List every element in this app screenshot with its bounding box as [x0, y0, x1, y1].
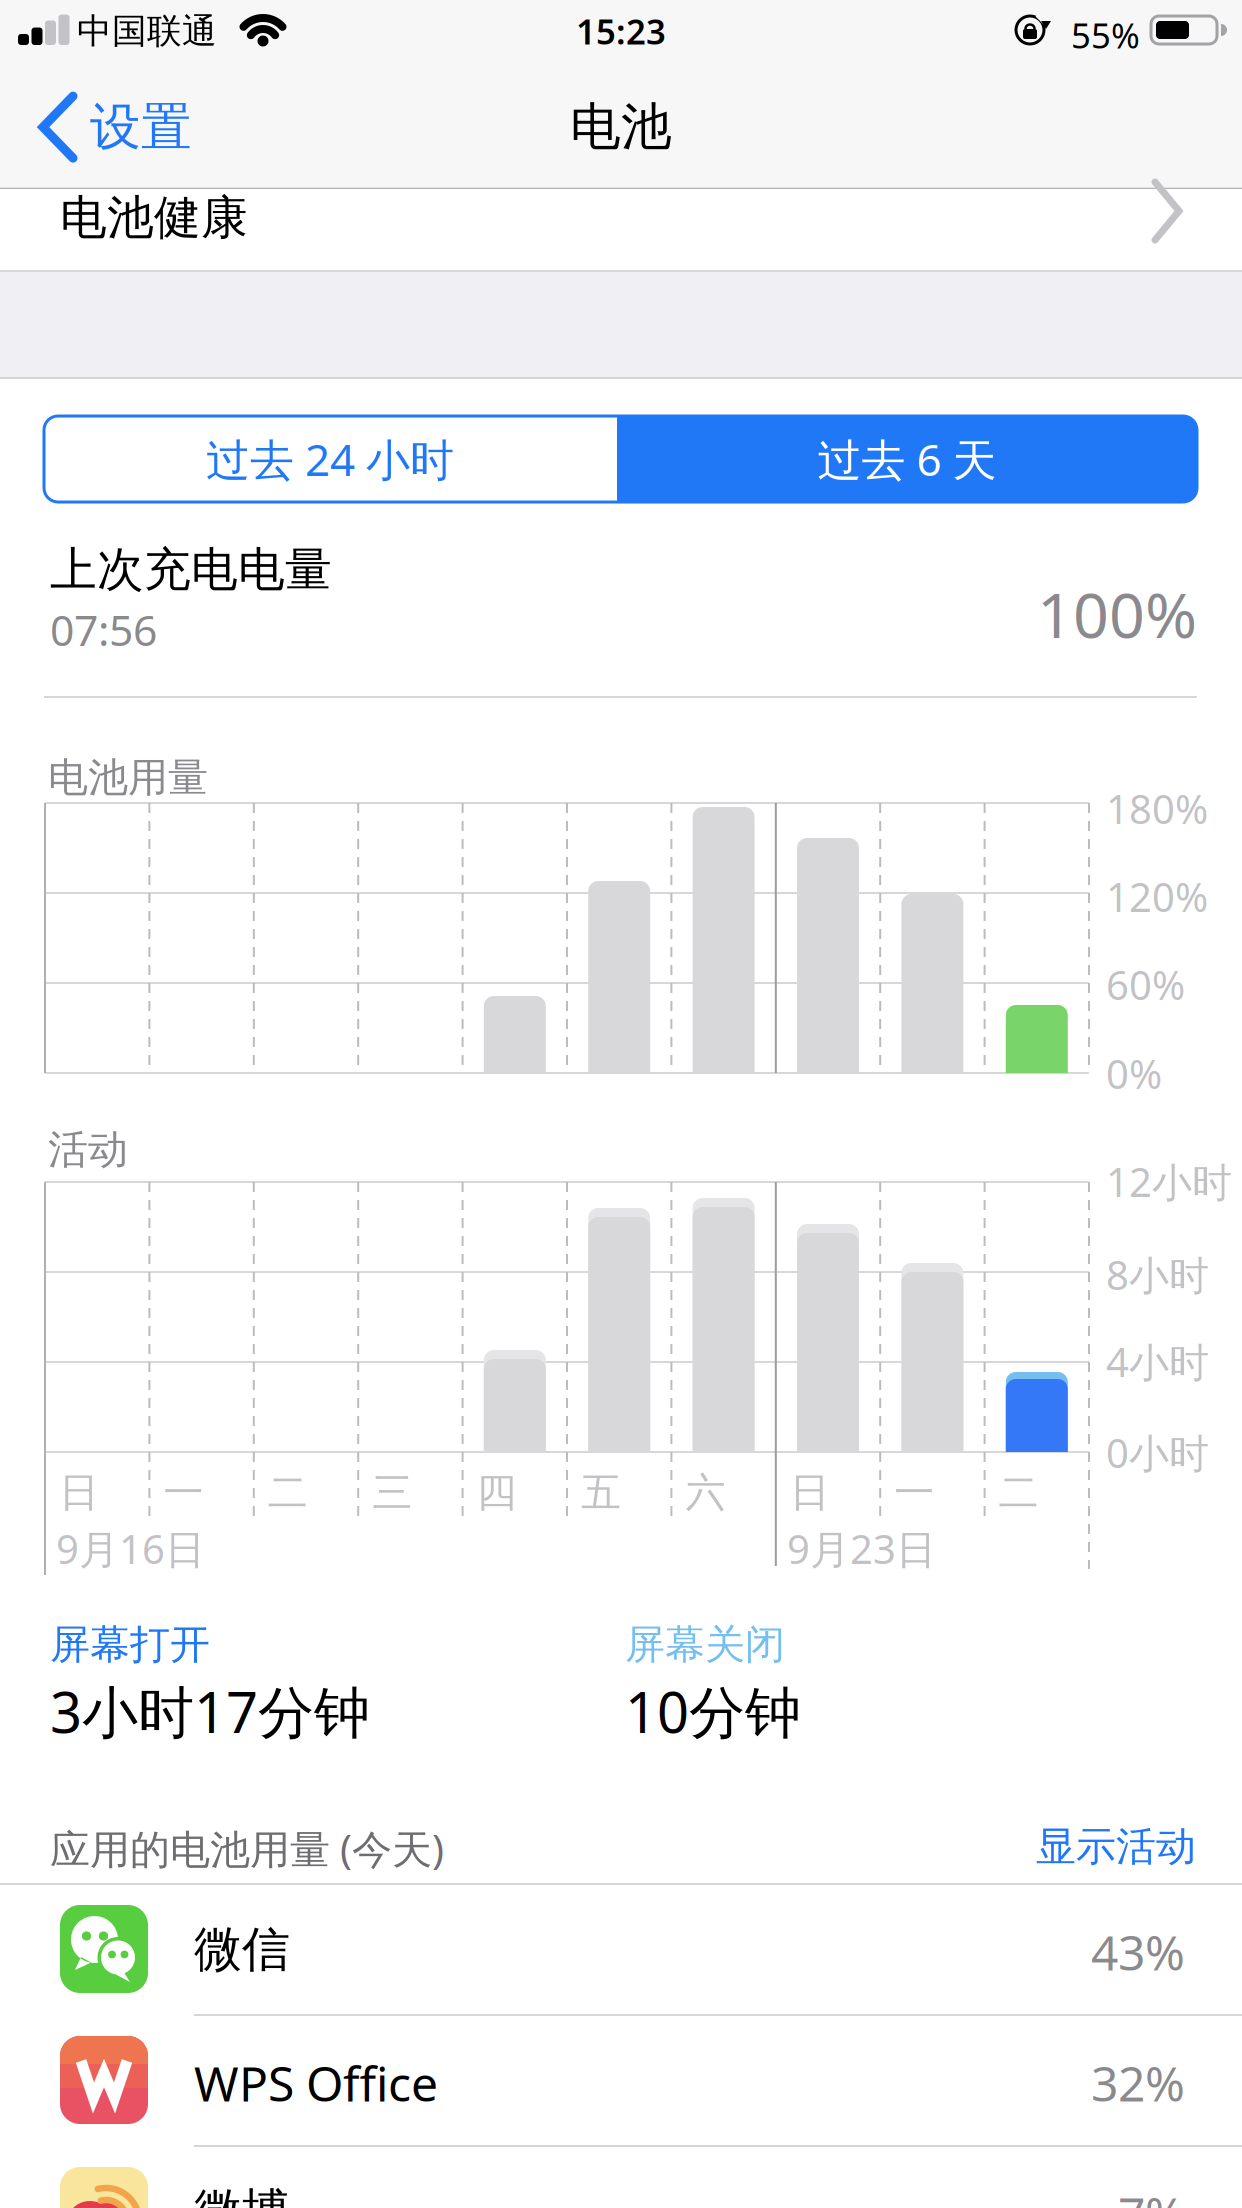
staticText: 微博: [194, 2182, 290, 2208]
staticText: 10分钟: [625, 1674, 801, 1748]
staticText: 二: [999, 1468, 1039, 1517]
staticText: 120%: [1106, 870, 1208, 923]
staticText: 0小时: [1106, 1426, 1209, 1479]
staticText: 显示活动: [1036, 1822, 1196, 1871]
staticText: 55%: [1071, 12, 1140, 58]
staticText: 屏幕打开: [50, 1620, 210, 1669]
staticText: 43%: [1091, 1920, 1185, 1984]
button[interactable]: WPS Office: [0, 2015, 1242, 2146]
button[interactable]: 过去 24 小时: [0, 0, 1242, 2208]
staticText: 屏幕关闭: [625, 1620, 785, 1669]
staticText: 六: [685, 1468, 725, 1517]
staticText: 五: [581, 1468, 621, 1517]
staticText: 日: [59, 1468, 99, 1517]
staticText: 9月16日: [56, 1522, 205, 1575]
staticText: 07:56: [50, 601, 157, 658]
button[interactable]: 返回设置: [42, 96, 192, 158]
staticText: 9月23日: [787, 1522, 936, 1575]
button[interactable]: 过去 6 天: [0, 0, 1242, 2208]
staticText: 电池: [570, 96, 672, 158]
staticText: 四: [477, 1468, 517, 1517]
staticText: 电池用量: [48, 753, 208, 802]
staticText: 应用的电池用量 (今天): [50, 1822, 444, 1875]
staticText: 二: [268, 1468, 308, 1517]
staticText: 3小时17分钟: [50, 1674, 370, 1748]
staticText: 4小时: [1106, 1335, 1209, 1388]
button[interactable]: 微信: [0, 1884, 1242, 2015]
button[interactable]: 微博: [0, 2146, 1242, 2208]
staticText: 上次充电电量: [50, 541, 332, 598]
staticText: 三: [372, 1468, 412, 1517]
staticText: 中国联通: [77, 10, 217, 53]
staticText: 12小时: [1106, 1155, 1232, 1208]
staticText: 100%: [1037, 572, 1197, 655]
staticText: 32%: [1091, 2051, 1185, 2115]
button[interactable]: 电池健康: [0, 189, 1242, 271]
staticText: 电池健康: [60, 189, 248, 246]
staticText: 设置: [90, 96, 192, 158]
staticText: WPS Office: [194, 2051, 438, 2115]
staticText: 0%: [1106, 1047, 1162, 1100]
button[interactable]: 显示活动: [1036, 1822, 1196, 1871]
staticText: 过去 24 小时: [206, 430, 454, 488]
staticText: 活动: [48, 1125, 128, 1174]
staticText: 15:23: [576, 8, 666, 54]
staticText: 60%: [1106, 958, 1185, 1011]
staticText: 过去 6 天: [817, 430, 996, 488]
staticText: 8小时: [1106, 1248, 1209, 1301]
staticText: 180%: [1106, 782, 1208, 835]
staticText: 微信: [194, 1920, 290, 1979]
staticText: 一: [894, 1468, 934, 1517]
staticText: 日: [790, 1468, 830, 1517]
staticText: 一: [163, 1468, 203, 1517]
staticText: 7%: [1118, 2182, 1185, 2208]
